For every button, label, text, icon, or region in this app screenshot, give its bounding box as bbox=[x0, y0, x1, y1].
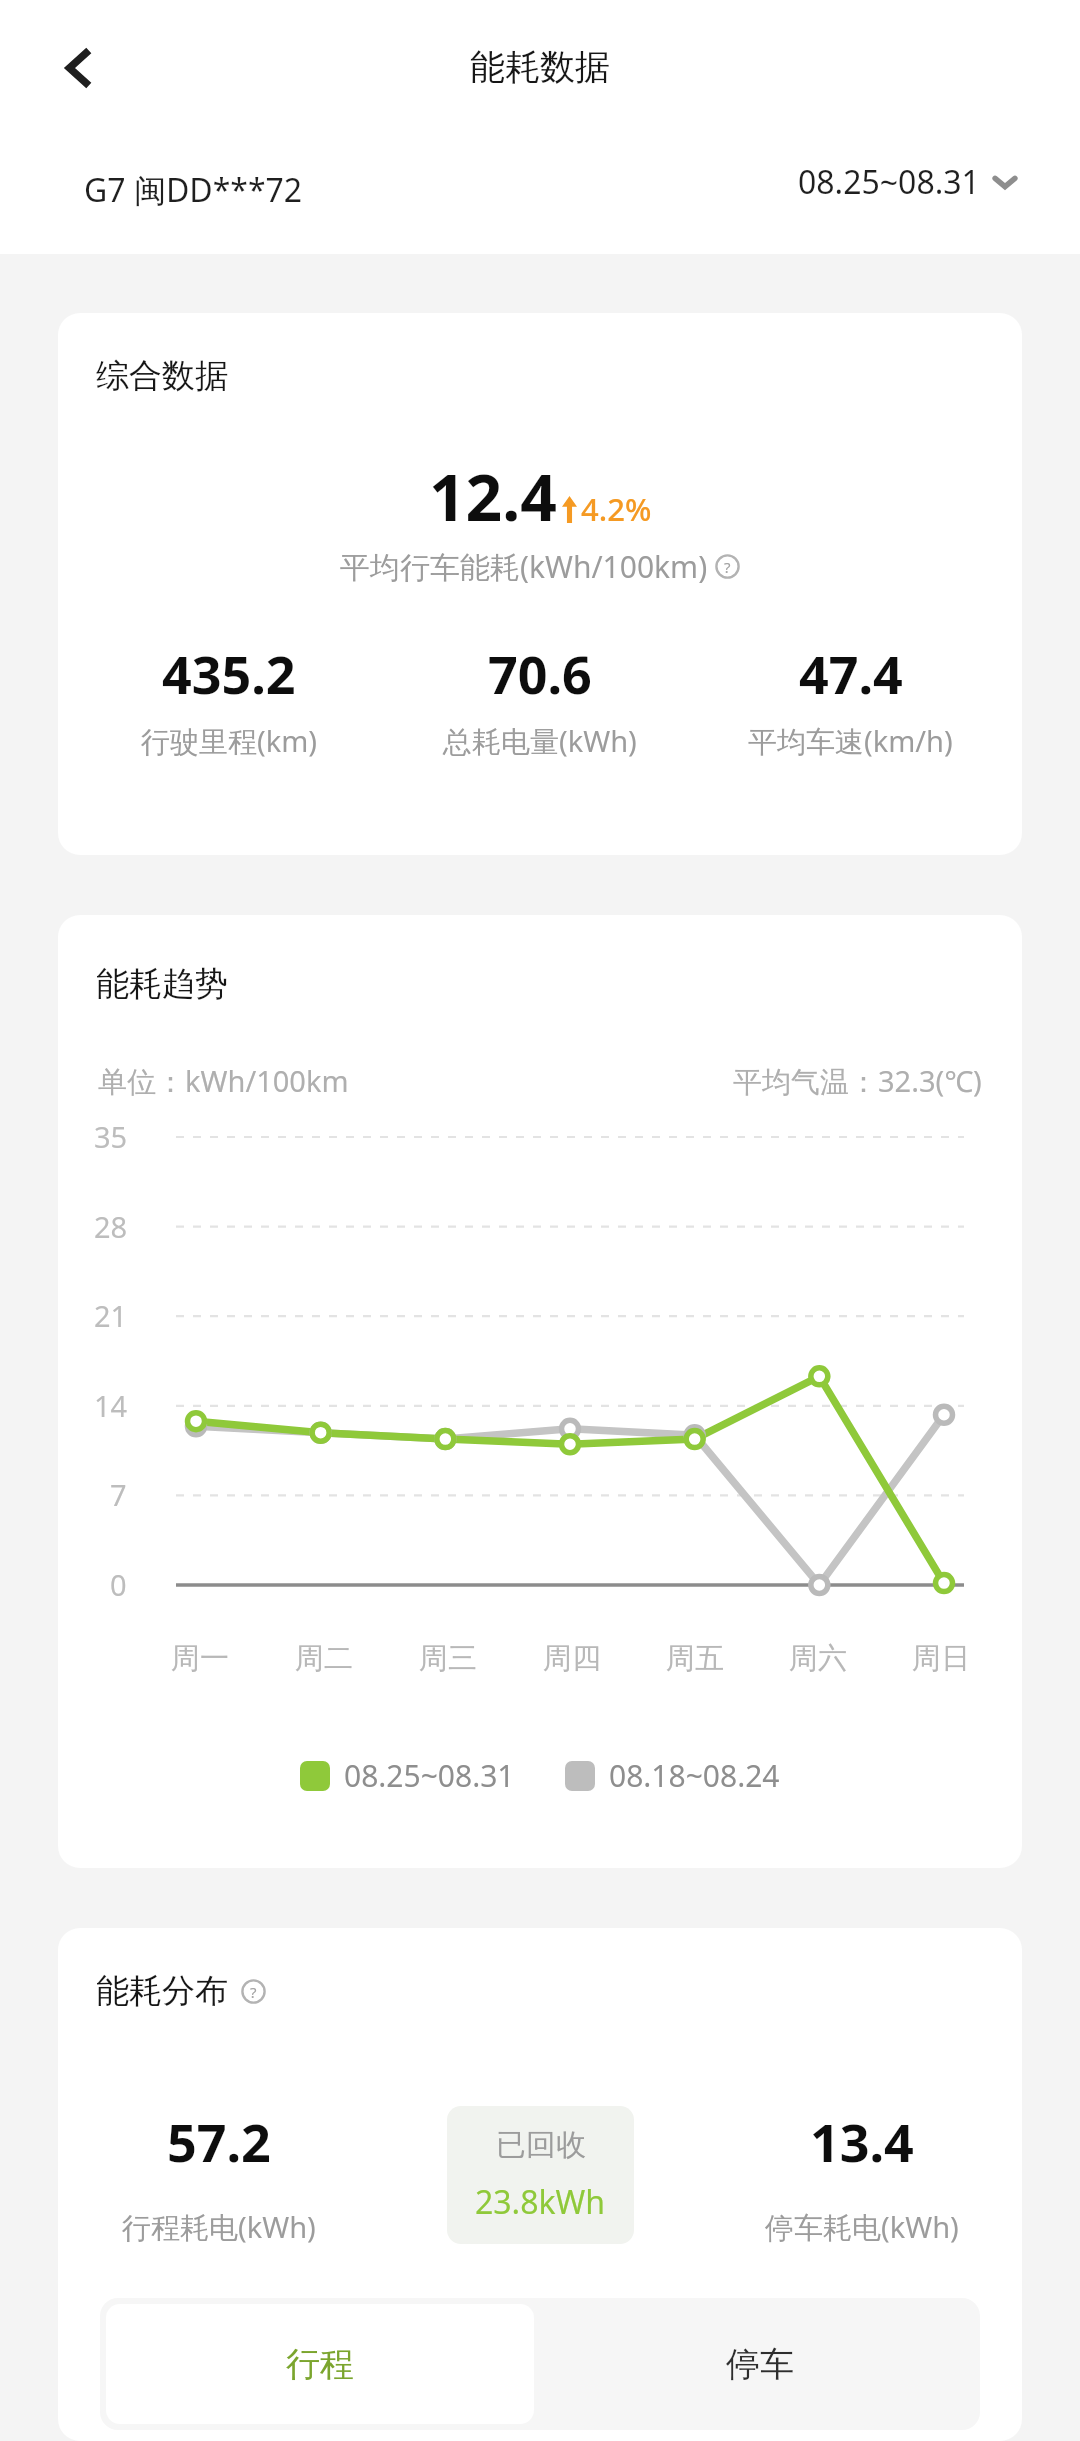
staticText: 能耗数据 bbox=[470, 45, 610, 89]
staticText: 已回收 bbox=[496, 2126, 586, 2164]
staticText: 周一 bbox=[171, 1640, 229, 1677]
staticText: 21 bbox=[94, 1296, 128, 1335]
staticText: 08.18~08.24 bbox=[609, 1755, 780, 1796]
staticText: 行程 bbox=[286, 2343, 354, 2386]
staticText: 周二 bbox=[295, 1640, 353, 1677]
staticText: 停车 bbox=[726, 2343, 794, 2386]
staticText: 平均气温：32.3(℃) bbox=[733, 1061, 982, 1101]
staticText: 23.8kWh bbox=[475, 2180, 606, 2224]
staticText: 12.4 bbox=[429, 453, 557, 540]
staticText: 13.4 bbox=[810, 2106, 914, 2177]
staticText: 08.25~08.31 bbox=[798, 160, 980, 204]
staticText: 单位：kWh/100km bbox=[98, 1061, 349, 1101]
staticText: 行程耗电(kWh) bbox=[122, 2207, 316, 2247]
staticText: 57.2 bbox=[167, 2106, 271, 2177]
button[interactable]: 08.25~08.31 bbox=[798, 160, 1018, 204]
staticText: 综合数据 bbox=[96, 355, 228, 397]
staticText: 平均行车能耗(kWh/100km) bbox=[340, 546, 708, 587]
staticText: 周五 bbox=[666, 1640, 724, 1677]
staticText: 周四 bbox=[543, 1640, 601, 1677]
staticText: 35 bbox=[94, 1117, 128, 1156]
staticText: 14 bbox=[94, 1386, 128, 1425]
staticText: ? bbox=[724, 557, 731, 577]
staticText: 能耗分布 bbox=[96, 1970, 228, 2012]
staticText: 停车耗电(kWh) bbox=[765, 2207, 959, 2247]
staticText: 周三 bbox=[419, 1640, 477, 1677]
staticText: 总耗电量(kWh) bbox=[443, 721, 637, 761]
staticText: ? bbox=[250, 1982, 257, 2002]
button[interactable]: Back bbox=[34, 22, 126, 114]
staticText: 7 bbox=[110, 1475, 127, 1514]
staticText: 28 bbox=[94, 1207, 128, 1246]
staticText: 435.2 bbox=[162, 638, 296, 709]
staticText: 平均车速(km/h) bbox=[748, 721, 953, 761]
staticText: 70.6 bbox=[488, 638, 592, 709]
staticText: 0 bbox=[110, 1565, 127, 1604]
staticText: 4.2% bbox=[581, 488, 652, 530]
staticText: 08.25~08.31 bbox=[344, 1755, 515, 1796]
staticText: 行驶里程(km) bbox=[141, 721, 318, 761]
staticText: 周六 bbox=[789, 1640, 847, 1677]
staticText: 能耗趋势 bbox=[96, 963, 228, 1005]
staticText: 周日 bbox=[912, 1640, 970, 1677]
staticText: G7 闽DD***72 bbox=[84, 168, 303, 212]
staticText: 47.4 bbox=[799, 638, 903, 709]
button[interactable]: 停车 bbox=[540, 2298, 980, 2430]
button[interactable]: 行程 bbox=[106, 2304, 534, 2424]
